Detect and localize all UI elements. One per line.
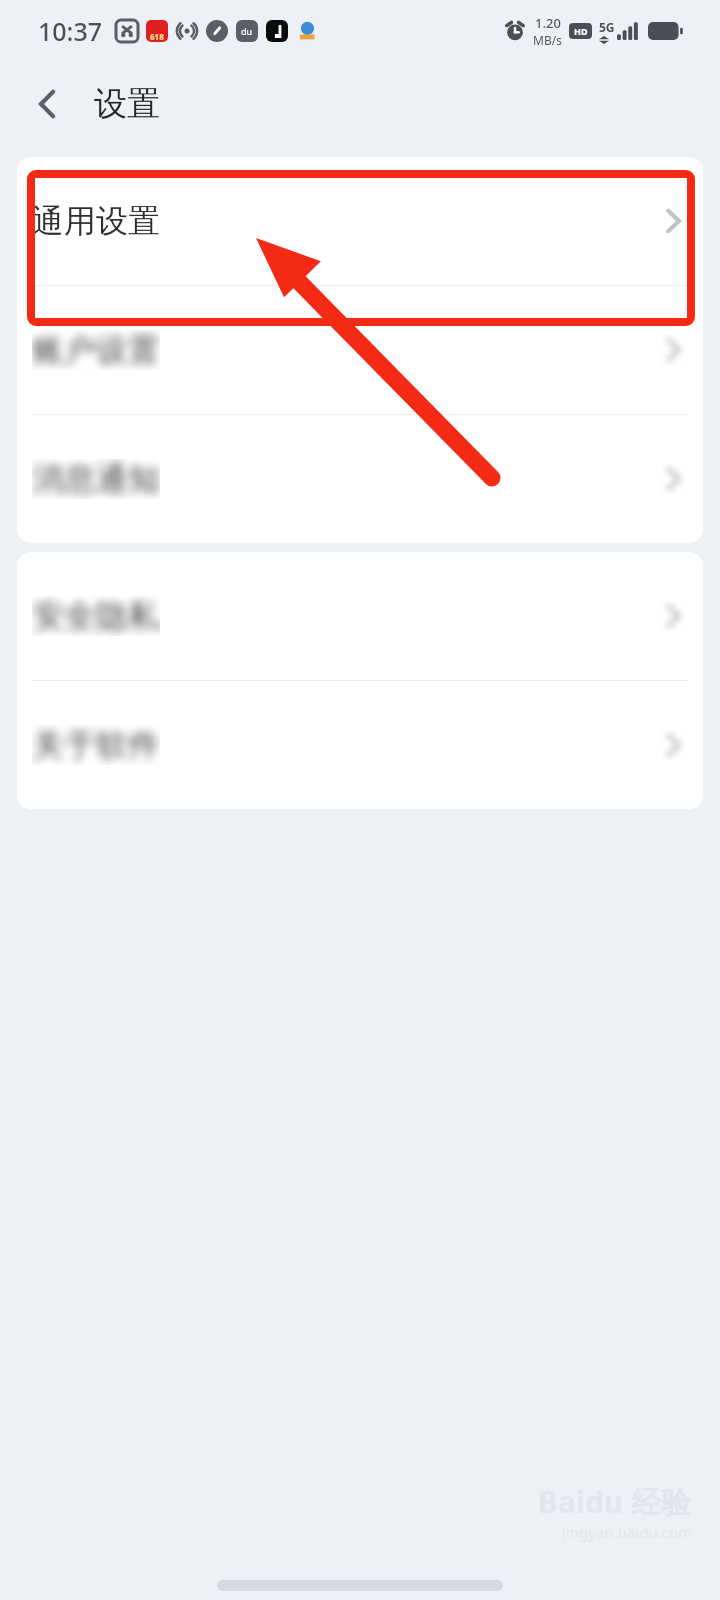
staticText: du bbox=[241, 25, 253, 37]
staticText: 账户设置 bbox=[32, 330, 160, 370]
button[interactable]: Back bbox=[18, 74, 78, 134]
staticText: MB/s bbox=[533, 32, 562, 48]
button[interactable]: 关于软件 bbox=[17, 681, 703, 809]
staticText: 关于软件 bbox=[32, 725, 160, 765]
staticText: 安全隐私 bbox=[32, 596, 160, 636]
staticText: Baidu 经验 bbox=[538, 1481, 692, 1522]
button[interactable]: 账户设置 bbox=[17, 286, 703, 414]
button[interactable]: 安全隐私 bbox=[17, 552, 703, 680]
button[interactable]: 通用设置 bbox=[17, 157, 703, 285]
staticText: 消息通知 bbox=[32, 459, 160, 499]
staticText: 618 bbox=[150, 31, 164, 42]
staticText: 通用设置 bbox=[32, 201, 160, 241]
button[interactable]: 消息通知 bbox=[17, 415, 703, 543]
staticText: HD bbox=[574, 25, 588, 37]
staticText: 10:37 bbox=[38, 14, 103, 48]
staticText: 1.20 bbox=[535, 14, 561, 32]
staticText: 5G bbox=[599, 19, 615, 35]
staticText: jingyan.baidu.com bbox=[562, 1522, 692, 1542]
staticText: 设置 bbox=[94, 83, 160, 125]
